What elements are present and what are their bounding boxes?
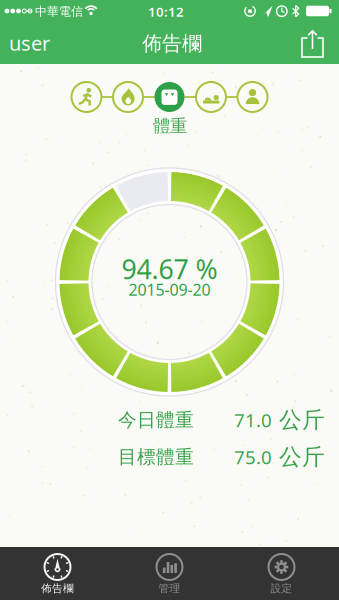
- staticText: 2015-09-20: [128, 279, 210, 300]
- button[interactable]: 體重: [153, 81, 185, 113]
- button[interactable]: 管理: [113, 547, 226, 600]
- button[interactable]: 卡路里: [113, 82, 143, 112]
- staticText: 體重: [153, 115, 187, 137]
- staticText: 94.67 %: [121, 251, 217, 287]
- staticText: 71.0: [234, 408, 272, 432]
- staticText: 中華電信: [35, 4, 83, 19]
- button[interactable]: Share: [290, 22, 334, 64]
- button[interactable]: 個人: [237, 82, 267, 112]
- staticText: 10:12: [148, 3, 184, 20]
- staticText: 公斤: [279, 443, 325, 471]
- button[interactable]: 佈告欄: [1, 547, 114, 600]
- staticText: 設定: [270, 582, 292, 595]
- button[interactable]: 設定: [225, 547, 338, 600]
- staticText: user: [9, 30, 50, 56]
- staticText: 佈告欄: [41, 582, 74, 595]
- staticText: 目標體重: [118, 445, 194, 468]
- staticText: 今日體重: [118, 408, 194, 431]
- button[interactable]: 睡眠: [196, 82, 226, 112]
- button[interactable]: user: [9, 22, 69, 64]
- staticText: 管理: [158, 582, 180, 595]
- staticText: 75.0: [234, 445, 272, 469]
- button[interactable]: 運動: [71, 82, 101, 112]
- staticText: 公斤: [279, 406, 325, 434]
- staticText: 佈告欄: [142, 31, 202, 56]
